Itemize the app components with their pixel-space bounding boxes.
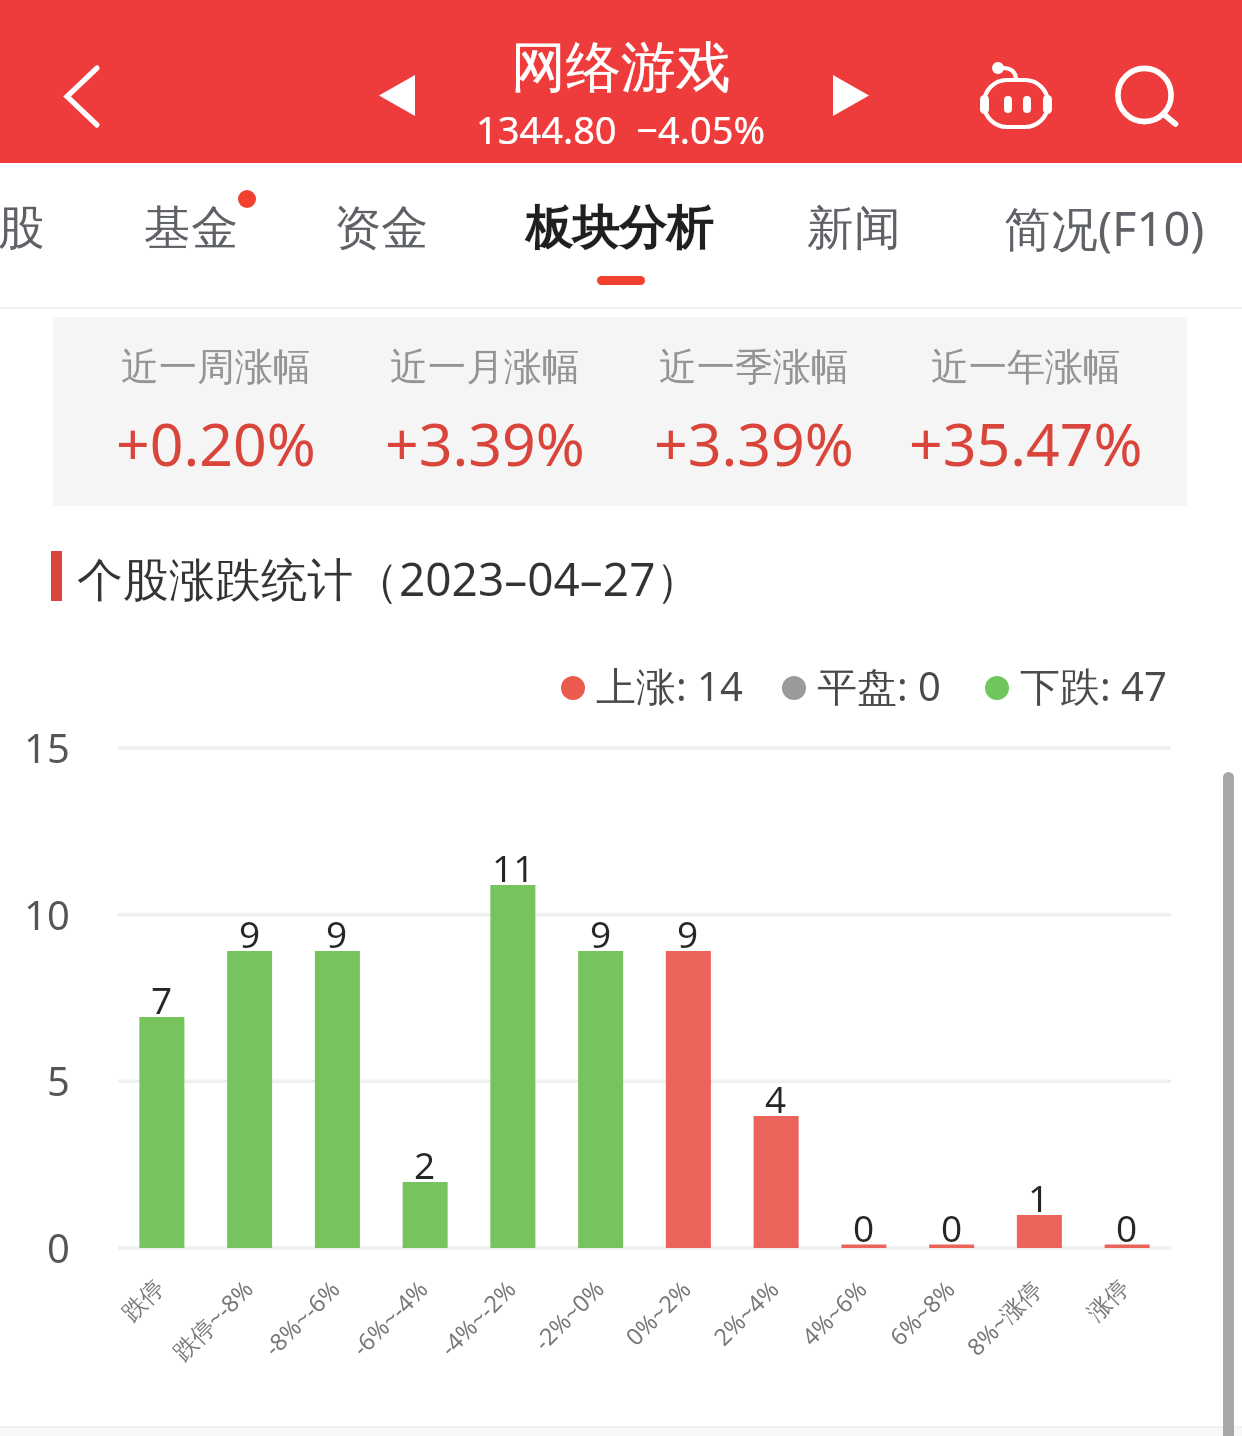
button[interactable]: 资金: [334, 197, 428, 256]
staticText: 平盘: 0: [817, 658, 941, 713]
staticText: -8%~-6%: [257, 1273, 347, 1363]
staticText: +3.39%: [385, 403, 585, 483]
staticText: +3.39%: [654, 403, 854, 483]
button[interactable]: Back: [30, 44, 134, 148]
staticText: 6%~8%: [882, 1273, 962, 1352]
staticText: 0: [941, 1202, 963, 1252]
staticText: 9: [677, 908, 699, 958]
staticText: 个股涨跌统计（2023–04–27）: [77, 547, 702, 610]
staticText: 4%~6%: [794, 1273, 874, 1352]
staticText: 近一周涨幅: [121, 343, 311, 391]
staticText: +35.47%: [909, 403, 1143, 483]
staticText: 1344.80 −4.05%: [476, 103, 766, 155]
staticText: 5: [47, 1053, 70, 1107]
button[interactable]: Search: [1090, 40, 1202, 152]
staticText: 2: [414, 1139, 436, 1189]
staticText: 15: [24, 720, 70, 774]
staticText: 0%~2%: [618, 1273, 698, 1352]
staticText: 跌停~-8%: [166, 1273, 260, 1367]
staticText: 0: [853, 1202, 875, 1252]
staticText: 0: [47, 1220, 70, 1274]
button[interactable]: Previous sector: [349, 47, 445, 143]
staticText: 近一季涨幅: [659, 343, 849, 391]
staticText: 跌停: [116, 1273, 170, 1327]
staticText: 10: [24, 887, 70, 941]
button[interactable]: 新闻: [807, 197, 901, 256]
staticText: 简况(F10): [1004, 196, 1205, 260]
staticText: -6%~-4%: [345, 1273, 435, 1363]
staticText: 0: [1116, 1202, 1138, 1252]
button[interactable]: 近一月涨幅: [335, 317, 635, 506]
button[interactable]: 基金: [144, 197, 238, 256]
staticText: 近一年涨幅: [931, 343, 1121, 391]
staticText: 9: [239, 908, 261, 958]
button[interactable]: 简况(F10): [1004, 194, 1205, 258]
button[interactable]: Next sector: [803, 47, 899, 143]
staticText: 基金: [144, 199, 238, 258]
button[interactable]: 平盘: 0: [782, 660, 941, 715]
button[interactable]: 股: [0, 197, 45, 256]
staticText: 股: [0, 199, 45, 258]
staticText: 板块分析: [525, 199, 713, 258]
staticText: 9: [326, 908, 348, 958]
staticText: 2%~4%: [706, 1273, 786, 1352]
staticText: 1: [1028, 1172, 1050, 1222]
button[interactable]: 板块分析: [525, 172, 713, 280]
staticText: 下跌: 47: [1020, 658, 1167, 713]
button[interactable]: 近一季涨幅: [604, 317, 904, 506]
button[interactable]: 下跌: 47: [985, 660, 1167, 715]
button[interactable]: 上涨: 14: [561, 660, 743, 715]
staticText: 8%~涨停: [959, 1273, 1049, 1362]
staticText: 4: [765, 1073, 787, 1123]
staticText: 资金: [334, 199, 428, 258]
staticText: +0.20%: [116, 403, 316, 483]
button[interactable]: 近一周涨幅: [66, 317, 366, 506]
staticText: -4%~-2%: [433, 1273, 523, 1363]
button[interactable]: AI assistant: [955, 40, 1067, 152]
staticText: -2%~0%: [526, 1273, 611, 1357]
staticText: 上涨: 14: [596, 658, 743, 713]
staticText: 近一月涨幅: [390, 343, 580, 391]
staticText: 涨停: [1081, 1273, 1135, 1327]
staticText: 9: [590, 908, 612, 958]
staticText: 7: [151, 974, 173, 1024]
staticText: 11: [492, 842, 535, 892]
button[interactable]: 近一年涨幅: [876, 317, 1176, 506]
staticText: 网络游戏: [511, 33, 731, 102]
staticText: 新闻: [807, 199, 901, 258]
